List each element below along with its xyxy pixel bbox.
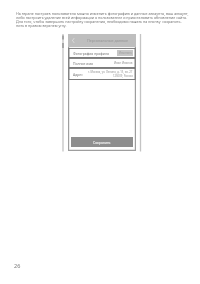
staticText: Персональные данные (87, 38, 129, 43)
staticText: Фотография профиля (73, 51, 109, 56)
staticText: Адрес (73, 72, 83, 77)
button[interactable]: Назад (68, 34, 78, 47)
button[interactable]: Адрес (73, 68, 133, 80)
staticText: Полное имя (73, 61, 94, 66)
staticText: Иван Иванов (114, 61, 133, 65)
staticText: г. Москва, ул. Ленина, д. 15, кв. 27 (88, 70, 133, 74)
staticText: Изменить (119, 51, 132, 55)
button[interactable]: Сохранить (71, 137, 133, 147)
staticText: Сохранить (93, 140, 111, 145)
button[interactable]: Фотография профиля (73, 48, 133, 58)
staticText: 125009, Россия (113, 74, 133, 78)
staticText: 26 (14, 262, 21, 269)
staticText: На экране настроек пользователя можно из… (16, 11, 192, 28)
button[interactable]: Полное имя (73, 58, 133, 68)
button[interactable]: Изменить (117, 50, 133, 56)
